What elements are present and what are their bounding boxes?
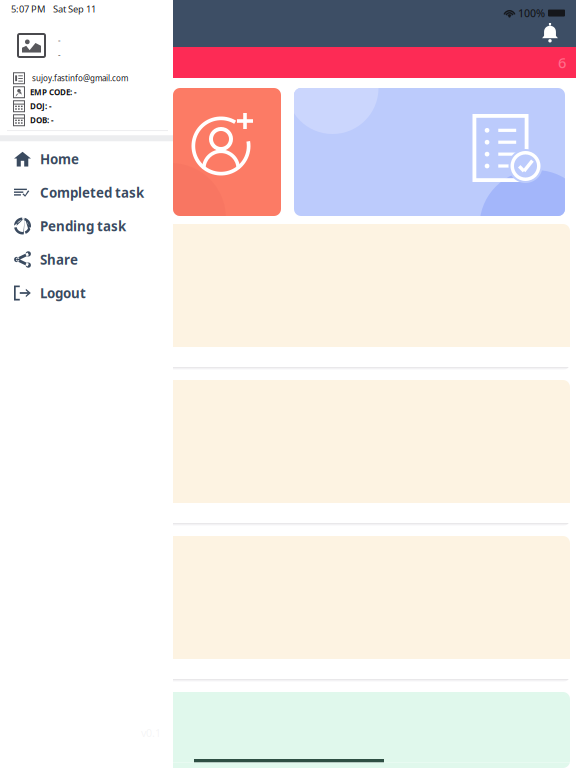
staticText: 5:07 PM (11, 3, 45, 15)
staticText: Home (40, 150, 79, 168)
button[interactable] (0, 536, 576, 682)
button[interactable]: Pending task (0, 209, 173, 243)
staticText: Completed task (40, 184, 144, 201)
button[interactable] (0, 380, 576, 526)
staticText: sujoy.fastinfo@gmail.com (32, 73, 128, 83)
staticText: Logout (40, 284, 86, 302)
button[interactable]: Add member (173, 88, 281, 216)
button[interactable]: Completed task (0, 176, 173, 209)
staticText: Share (40, 251, 78, 268)
staticText: 6 (558, 53, 566, 72)
button[interactable]: Tasks (294, 88, 565, 216)
staticText: DOB: - (30, 115, 54, 125)
button[interactable] (0, 224, 576, 370)
button[interactable] (0, 692, 576, 768)
button[interactable]: Share (0, 243, 173, 276)
staticText: - (58, 50, 61, 60)
button[interactable]: Home (0, 142, 173, 176)
staticText: Pending task (40, 217, 126, 235)
button[interactable]: Logout (0, 276, 173, 310)
staticText: EMP CODE: - (30, 87, 77, 97)
button[interactable]: Notifications (541, 23, 576, 47)
staticText: 100% (518, 6, 545, 20)
staticText: Sat Sep 11 (53, 3, 96, 15)
staticText: - (58, 35, 61, 46)
staticText: DOJ: - (30, 101, 52, 111)
